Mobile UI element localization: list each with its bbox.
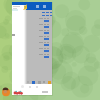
button[interactable]: App bar	[26, 2, 52, 10]
button[interactable]	[27, 53, 52, 59]
button[interactable]	[27, 17, 52, 23]
button[interactable]	[27, 47, 52, 53]
button[interactable]	[27, 35, 52, 41]
button[interactable]: Profile	[2, 87, 10, 96]
button[interactable]	[27, 29, 52, 35]
button[interactable]	[27, 23, 52, 29]
button[interactable]	[27, 11, 52, 14]
button[interactable]	[27, 14, 52, 17]
button[interactable]	[27, 41, 52, 47]
